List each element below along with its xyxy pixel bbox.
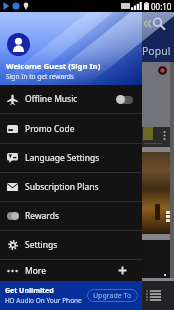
staticText: Settings (25, 239, 58, 251)
staticText: More (25, 265, 46, 277)
staticText: Get Unlimited (5, 286, 54, 296)
button[interactable]: Welcome Guest (Sign In) (0, 12, 142, 85)
button[interactable]: Language Settings (0, 144, 142, 172)
other: Add (118, 266, 127, 275)
other: Search (152, 17, 165, 30)
staticText: Promo Code (25, 123, 75, 135)
staticText: Upgrade To (93, 291, 132, 301)
other: Offline Music toggle (116, 95, 133, 104)
other: Queue (146, 290, 161, 301)
button[interactable]: Upgrade To (87, 289, 138, 302)
button[interactable]: Offline Music (0, 85, 142, 113)
button[interactable]: Settings (0, 231, 142, 259)
button[interactable]: Get Unlimited (0, 281, 142, 310)
button[interactable]: Rewards (0, 202, 142, 230)
staticText: HD Audio On Your Phone (5, 296, 82, 305)
button[interactable]: Promo Code (0, 114, 142, 143)
staticText: Rewards (25, 210, 60, 222)
button[interactable]: Subscription Plans (0, 173, 142, 201)
staticText: 00:10 (151, 1, 172, 12)
staticText: Offline Music (25, 93, 78, 105)
button[interactable]: More (0, 260, 142, 281)
staticText: Subscription Plans (25, 181, 99, 193)
staticText: Language Settings (25, 152, 100, 164)
staticText: Welcome Guest (Sign In) (6, 61, 101, 72)
staticText: Popular Music (142, 44, 174, 58)
staticText: Sign In to get rewards (6, 72, 75, 81)
